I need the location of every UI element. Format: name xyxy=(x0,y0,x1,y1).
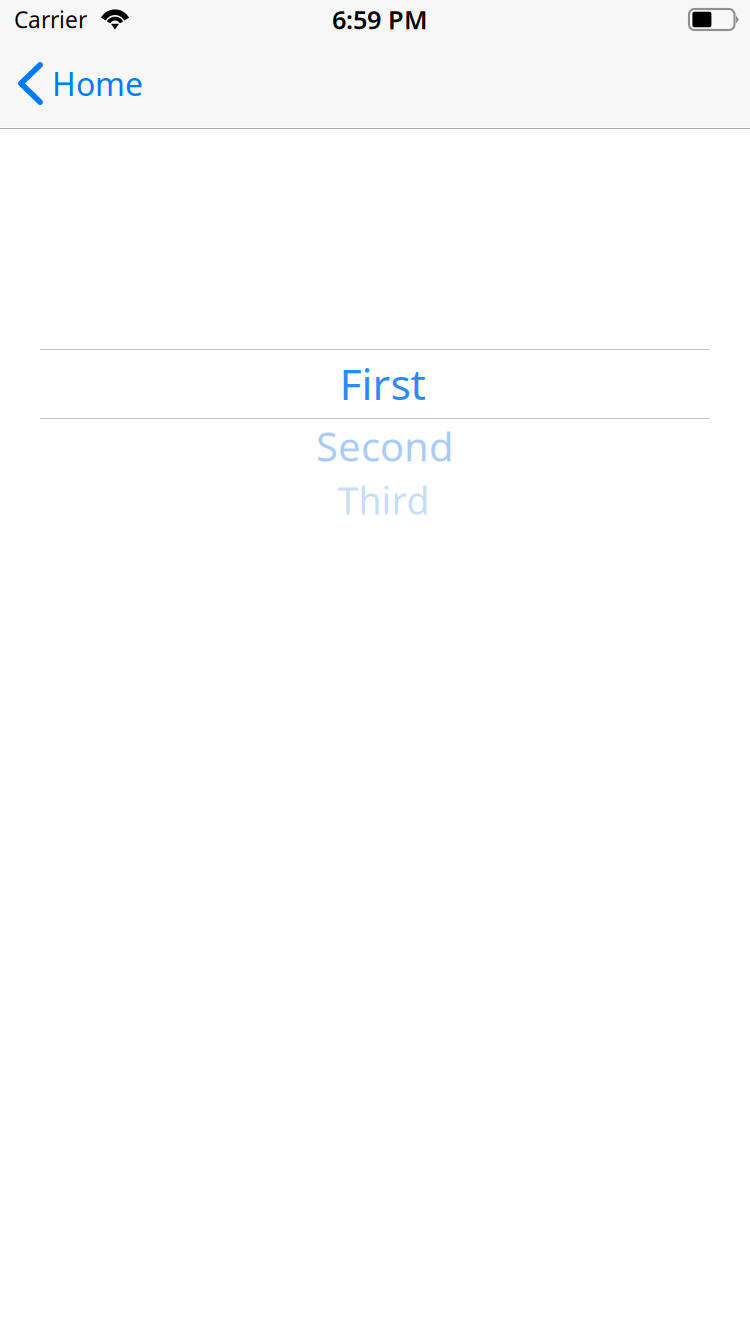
staticText: Third xyxy=(337,475,429,525)
button[interactable]: Third xyxy=(0,474,750,526)
button[interactable]: Second xyxy=(0,418,750,474)
button[interactable]: First xyxy=(0,349,750,418)
staticText: Second xyxy=(316,419,454,472)
staticText: 6:59 PM xyxy=(332,3,428,36)
staticText: First xyxy=(339,355,425,412)
button[interactable]: Home xyxy=(0,39,159,127)
staticText: Carrier xyxy=(14,4,87,34)
staticText: Home xyxy=(52,62,143,105)
